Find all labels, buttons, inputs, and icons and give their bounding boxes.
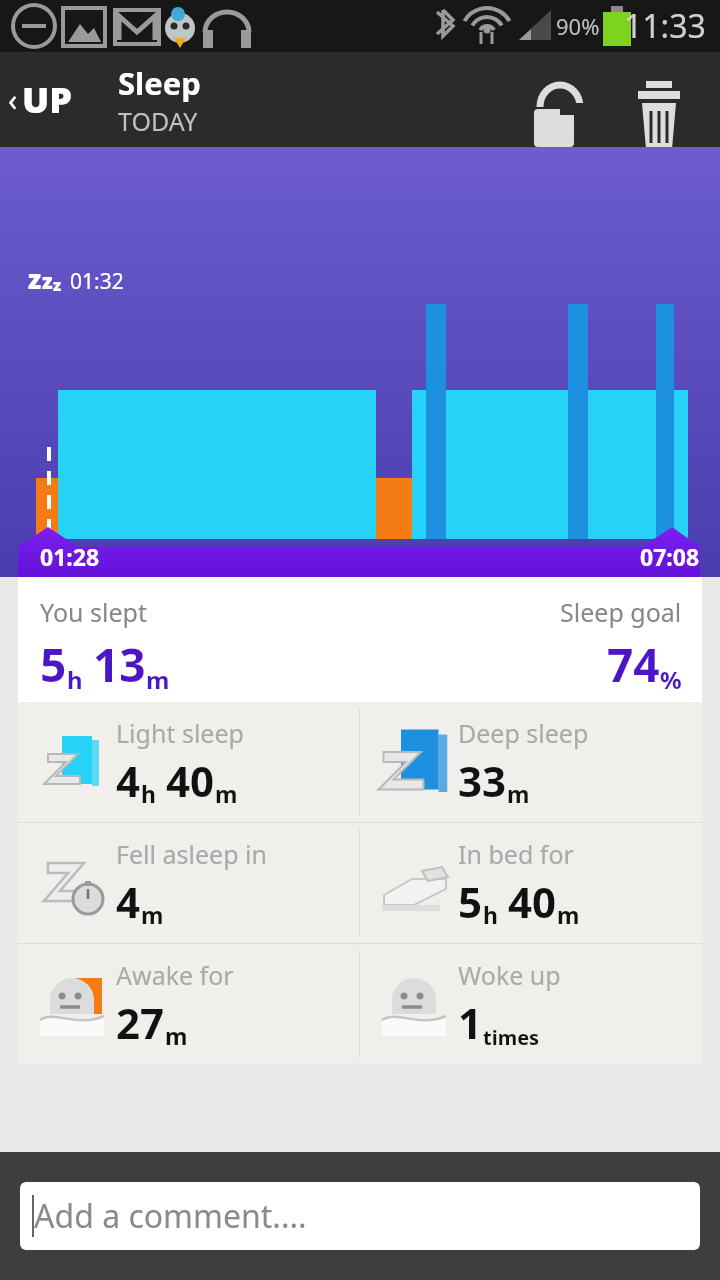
button[interactable]: In bed for <box>360 823 702 943</box>
staticText: 40 <box>166 752 215 809</box>
staticText: 90% <box>556 11 600 41</box>
staticText: m <box>215 778 238 809</box>
staticText: 5 <box>458 873 483 930</box>
staticText: TODAY <box>118 104 198 138</box>
staticText: Sleep <box>118 62 201 104</box>
button[interactable]: Awake for <box>18 944 359 1064</box>
staticText: ‹ <box>8 79 18 120</box>
staticText: % <box>660 663 682 696</box>
staticText: h <box>67 663 83 696</box>
staticText: h <box>483 899 498 930</box>
button[interactable]: Add a comment.... <box>20 1182 700 1250</box>
staticText: 13 <box>93 633 146 696</box>
staticText: 27 <box>116 994 165 1051</box>
staticText: Woke up <box>458 958 561 992</box>
staticText: m <box>141 899 164 930</box>
button[interactable]: Lock <box>518 67 584 133</box>
staticText: Awake for <box>116 958 234 992</box>
button[interactable]: Fell asleep in <box>18 823 359 943</box>
staticText: 40 <box>508 873 557 930</box>
staticText: m <box>507 778 530 809</box>
staticText: m <box>165 1020 188 1051</box>
staticText: Deep sleep <box>458 716 589 750</box>
button[interactable]: ‹ <box>0 67 85 132</box>
staticText: In bed for <box>458 837 574 871</box>
staticText: z <box>42 267 53 296</box>
staticText: 4 <box>116 752 141 809</box>
staticText: 01:28 <box>40 541 100 572</box>
staticText: 1 <box>458 994 483 1051</box>
staticText: UP <box>22 75 73 124</box>
staticText: 4 <box>116 873 141 930</box>
staticText: m <box>557 899 580 930</box>
staticText: times <box>483 1024 540 1051</box>
staticText: 01:32 <box>70 267 124 296</box>
staticText: m <box>146 663 170 696</box>
button[interactable]: You slept <box>18 577 702 702</box>
button[interactable]: Woke up <box>360 944 702 1064</box>
staticText: h <box>141 778 156 809</box>
staticText: Sleep goal <box>560 595 682 629</box>
staticText: Light sleep <box>116 716 244 750</box>
staticText: 11:33 <box>624 4 706 48</box>
staticText: z <box>28 261 42 296</box>
staticText: 5 <box>40 633 67 696</box>
staticText: 74 <box>607 633 660 696</box>
staticText: You slept <box>40 595 147 629</box>
button[interactable]: Delete <box>626 67 692 133</box>
button[interactable]: Light sleep <box>18 702 359 822</box>
staticText: 33 <box>458 752 507 809</box>
staticText: 07:08 <box>640 541 700 572</box>
staticText: z <box>53 274 62 296</box>
staticText: Fell asleep in <box>116 837 267 871</box>
staticText: Add a comment.... <box>34 1194 307 1238</box>
button[interactable]: Deep sleep <box>360 702 702 822</box>
